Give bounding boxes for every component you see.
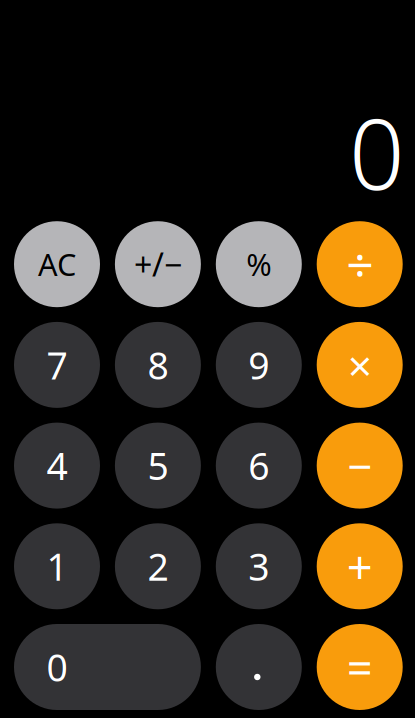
staticText: 8 [147,340,168,390]
button[interactable]: Percent [216,221,302,307]
staticText: − [347,436,372,495]
button[interactable]: Multiply [317,322,403,408]
staticText: 5 [147,441,168,490]
button[interactable]: 0 [14,624,201,710]
button[interactable]: Divide [317,221,403,307]
staticText: = [347,637,373,697]
button[interactable]: Plus [317,523,403,609]
staticText: 2 [147,541,168,591]
staticText: +/− [134,243,182,285]
staticText: × [348,337,372,393]
button[interactable]: 5 [115,423,201,509]
button[interactable]: 7 [14,322,100,408]
staticText: ÷ [346,232,373,296]
staticText: 7 [46,340,67,390]
staticText: 6 [248,441,269,490]
button[interactable]: Toggle sign [115,221,201,307]
button[interactable]: 2 [115,523,201,609]
staticText: + [347,536,373,596]
button[interactable]: Decimal point [216,624,302,710]
staticText: AC [38,244,76,284]
staticText: 9 [248,340,269,390]
button[interactable]: 9 [216,322,302,408]
button[interactable]: Minus [317,423,403,509]
button[interactable]: 6 [216,423,302,509]
button[interactable]: 3 [216,523,302,609]
staticText: % [246,244,271,284]
staticText: 3 [248,541,269,591]
button[interactable]: Equals [317,624,403,710]
staticText: 0 [46,642,67,692]
button[interactable]: 4 [14,423,100,509]
staticText: 0 [349,87,405,217]
staticText: 4 [46,441,67,490]
button[interactable]: 1 [14,523,100,609]
staticText: 1 [46,541,67,591]
button[interactable]: All clear [14,221,100,307]
button[interactable]: 8 [115,322,201,408]
